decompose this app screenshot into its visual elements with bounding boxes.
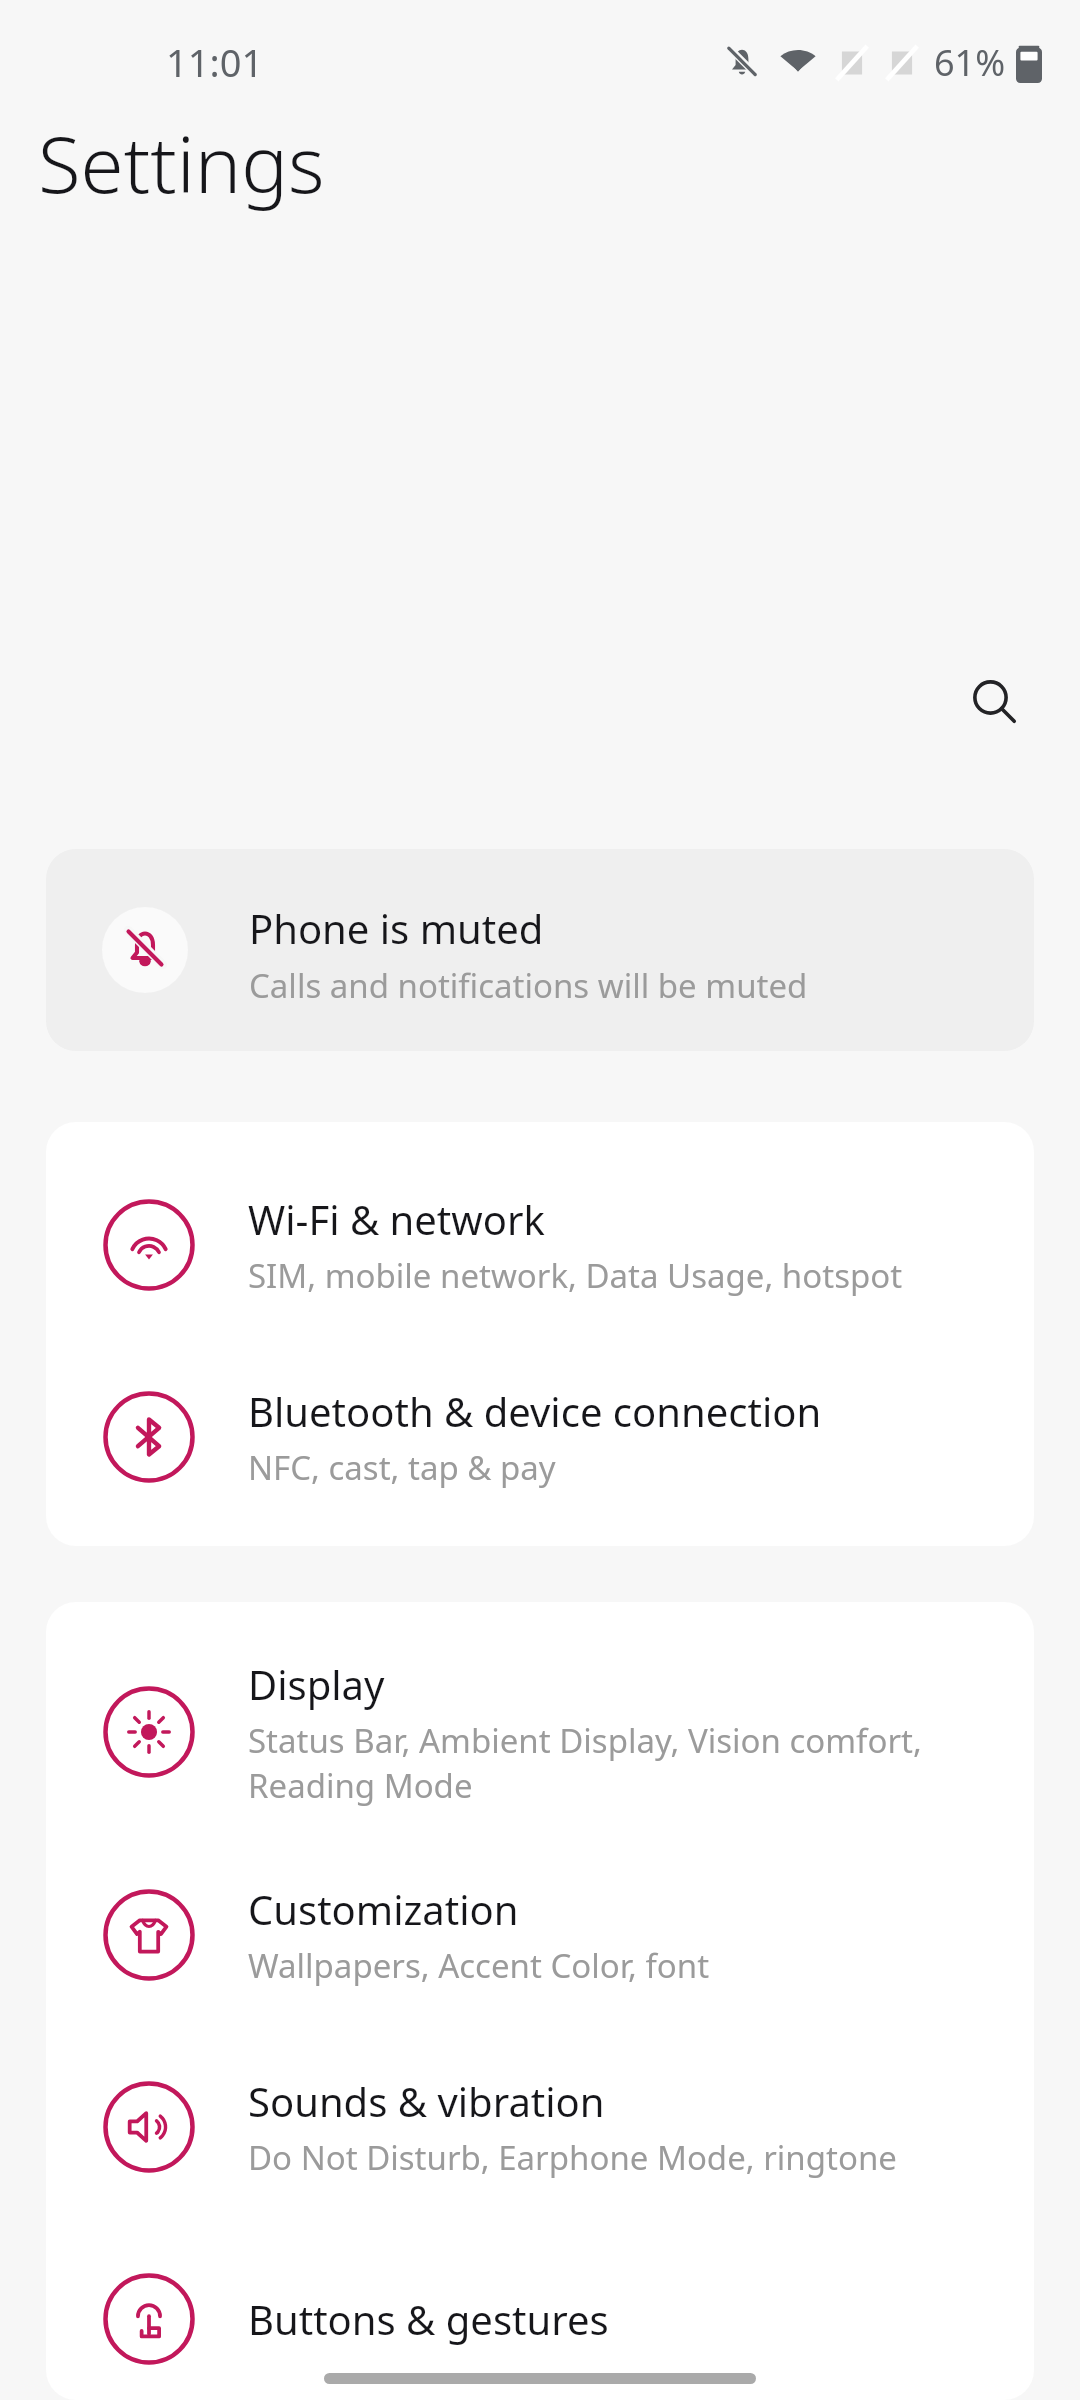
staticText: Do Not Disturb, Earphone Mode, ringtone [248, 2135, 897, 2180]
staticText: Buttons & gestures [248, 2292, 609, 2346]
button[interactable]: Sounds & vibration [46, 2042, 1034, 2212]
button[interactable]: Wi-Fi & network [46, 1160, 1034, 1330]
button[interactable]: Search [954, 661, 1034, 741]
staticText: Wi-Fi & network [248, 1192, 545, 1246]
staticText: Customization [248, 1882, 519, 1936]
staticText: NFC, cast, tap & pay [248, 1445, 556, 1490]
button[interactable]: Display [46, 1632, 1034, 1832]
staticText: Phone is muted [249, 901, 544, 955]
staticText: Wallpapers, Accent Color, font [248, 1943, 710, 1988]
staticText: SIM, mobile network, Data Usage, hotspot [248, 1253, 903, 1298]
button[interactable]: Buttons & gestures [46, 2234, 1034, 2400]
staticText: Display [248, 1657, 385, 1711]
button[interactable]: Customization [46, 1850, 1034, 2020]
button[interactable]: Bluetooth & device connection [46, 1352, 1034, 1522]
staticText: Settings [38, 110, 325, 216]
staticText: 61% [934, 38, 1006, 87]
staticText: 11:01 [166, 36, 264, 88]
staticText: Sounds & vibration [248, 2074, 605, 2128]
staticText: Bluetooth & device connection [248, 1384, 822, 1438]
staticText: Calls and notifications will be muted [249, 963, 808, 1008]
staticText: Status Bar, Ambient Display, Vision comf… [248, 1718, 922, 1807]
button[interactable]: Phone is muted [46, 849, 1034, 1051]
